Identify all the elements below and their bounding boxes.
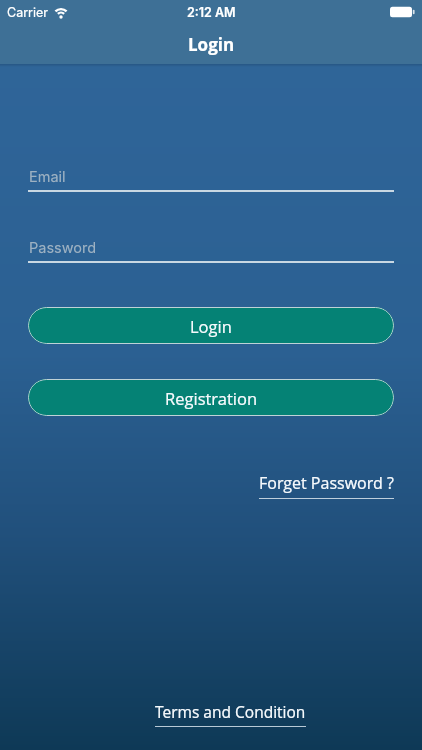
staticText: Password	[29, 239, 97, 257]
staticText: Registration	[165, 387, 258, 409]
staticText: Login	[188, 33, 235, 56]
button[interactable]: Terms and Condition	[155, 701, 306, 727]
button[interactable]: Registration	[28, 379, 394, 416]
staticText: Login	[190, 315, 232, 337]
staticText: Email	[29, 168, 66, 186]
staticText: Carrier	[7, 5, 48, 20]
button[interactable]: Email	[28, 164, 394, 192]
button[interactable]: Password	[28, 235, 394, 263]
staticText: Forget Password ?	[259, 472, 394, 494]
staticText: Terms and Condition	[155, 701, 306, 722]
button[interactable]: Forget Password ?	[259, 472, 394, 499]
button[interactable]: Login	[28, 307, 394, 344]
staticText: 2:12 AM	[187, 5, 236, 20]
